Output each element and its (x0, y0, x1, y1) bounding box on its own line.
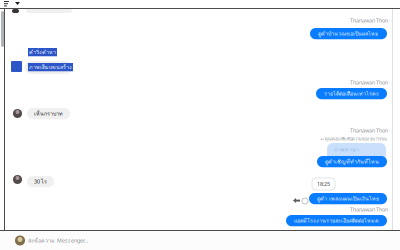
button[interactable]: Sort (4, 0, 22, 8)
button[interactable]: Reply (293, 198, 300, 203)
staticText: คุณตอบกลับข้อความของ ธนาวรรณ (325, 136, 387, 142)
button[interactable]: เห็นกราบาท (27, 108, 70, 119)
staticText: ↩ (320, 137, 323, 141)
staticText: ภาพเต็มแขนสร้าง (29, 63, 72, 71)
staticText: เห็นกราบาท (34, 109, 63, 118)
staticText: Thanawan Thon (350, 17, 388, 24)
staticText: ภาพท่าน่า (334, 145, 359, 154)
staticText: Thanawan Thon (350, 206, 388, 213)
staticText: Thanawan Thon (350, 79, 388, 86)
button[interactable]: ส่งข้อความ Messenger… (0, 231, 400, 250)
button[interactable]: ดูคำเชิญที่ทำกันที่ไหน (317, 156, 387, 167)
staticText: แอดมีโรงงานรายละเอียดติดต่อไหมค (294, 216, 379, 225)
staticText: ดูคำบำนวณขอเป็นผลไหม (318, 29, 379, 38)
staticText: รายได้ต่อเดือนเท่าไรคะ (324, 89, 379, 98)
staticText: ส่งข้อความ Messenger… (28, 236, 88, 245)
staticText: ดูคำ เพลงแผนเป็นเงินไทย (317, 194, 379, 203)
button[interactable]: React (302, 198, 308, 204)
button[interactable]: 30 ไร (27, 176, 54, 187)
button[interactable]: แอดมีโรงงานรายละเอียดติดต่อไหมค (286, 215, 387, 226)
staticText: คำวิ่งคำหา (29, 48, 56, 56)
staticText: ดูคำเชิญที่ทำกันที่ไหน (325, 157, 379, 166)
staticText: 18:25 (317, 180, 330, 188)
staticText: 30 ไร (34, 177, 47, 186)
button[interactable]: ดูคำบำนวณขอเป็นผลไหม (310, 28, 387, 39)
button[interactable]: ดูคำ เพลงแผนเป็นเงินไทย (309, 193, 387, 204)
staticText: Thanawan Thon (350, 127, 388, 134)
button[interactable]: รายได้ต่อเดือนเท่าไรคะ (316, 88, 387, 99)
